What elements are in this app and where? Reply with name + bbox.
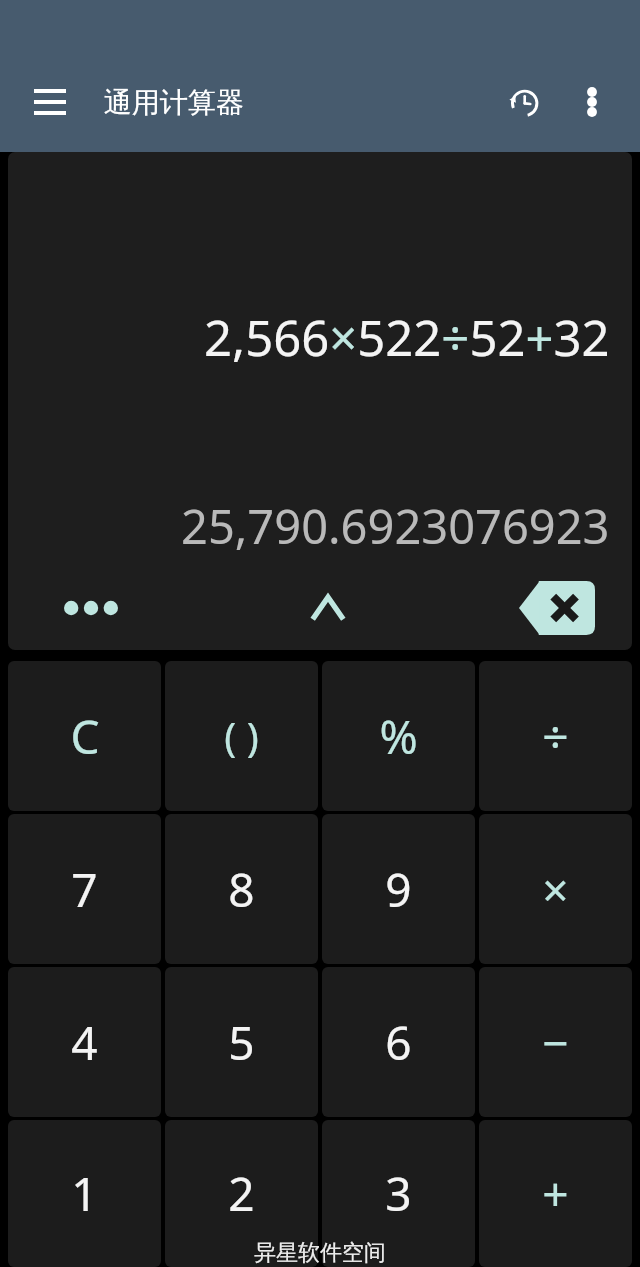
staticText: C: [70, 705, 100, 768]
staticText: 2: [228, 1162, 255, 1225]
button[interactable]: Menu: [20, 72, 80, 132]
staticText: 1: [71, 1162, 98, 1225]
staticText: 25,790.6923076923: [181, 494, 610, 558]
button[interactable]: 2: [165, 1120, 318, 1267]
staticText: ( ): [224, 709, 259, 763]
button[interactable]: 7: [8, 814, 161, 964]
staticText: ×: [542, 858, 569, 921]
staticText: 8: [228, 858, 255, 921]
button[interactable]: More options: [566, 76, 618, 128]
button[interactable]: ÷: [479, 661, 632, 811]
staticText: 7: [71, 858, 98, 921]
button[interactable]: ( ): [165, 661, 318, 811]
button[interactable]: 6: [322, 967, 475, 1117]
staticText: 4: [71, 1011, 98, 1074]
staticText: 5: [228, 1011, 255, 1074]
button[interactable]: 9: [322, 814, 475, 964]
button[interactable]: 4: [8, 967, 161, 1117]
button[interactable]: Expand: [173, 566, 482, 650]
button[interactable]: C: [8, 661, 161, 811]
button[interactable]: ×: [479, 814, 632, 964]
button[interactable]: 5: [165, 967, 318, 1117]
staticText: 9: [385, 858, 412, 921]
staticText: 3: [385, 1162, 412, 1225]
staticText: 2,566×522÷52+32: [204, 304, 610, 371]
staticText: −: [542, 1011, 569, 1074]
button[interactable]: 3: [322, 1120, 475, 1267]
button[interactable]: History: [494, 73, 552, 131]
button[interactable]: %: [322, 661, 475, 811]
staticText: 6: [385, 1011, 412, 1074]
button[interactable]: 8: [165, 814, 318, 964]
staticText: +: [542, 1162, 569, 1225]
staticText: 异星软件空间: [254, 1239, 386, 1267]
button[interactable]: +: [479, 1120, 632, 1267]
staticText: 通用计算器: [104, 85, 244, 120]
button[interactable]: 1: [8, 1120, 161, 1267]
button[interactable]: Backspace: [482, 566, 632, 650]
staticText: %: [379, 705, 418, 768]
button[interactable]: −: [479, 967, 632, 1117]
button[interactable]: More: [8, 566, 173, 650]
staticText: ÷: [542, 705, 569, 768]
